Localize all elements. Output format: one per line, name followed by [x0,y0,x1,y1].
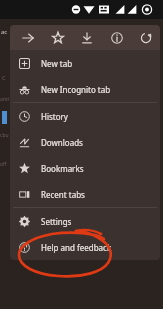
button[interactable]: Bookmark [48,28,68,48]
staticText: History [41,111,68,122]
button[interactable]: Download [77,28,97,48]
button[interactable]: History [10,103,160,129]
button[interactable]: Settings [10,208,160,234]
staticText: Help and feedback [41,242,112,253]
button[interactable]: Bookmarks [10,155,160,181]
button[interactable]: Downloads [10,129,160,155]
staticText: New tab [41,58,73,69]
staticText: Downloads [41,137,83,148]
button[interactable]: Forward [18,28,38,48]
button[interactable]: New tab [10,50,160,76]
staticText: anti [0,96,9,103]
button[interactable]: Page info [107,28,127,48]
staticText: off [0,161,7,168]
staticText: New Incognito tab [41,84,111,95]
staticText: C [2,74,6,82]
staticText: Settings [41,216,72,227]
staticText: Recent tabs [41,189,85,200]
staticText: Bookmarks [41,163,84,174]
button[interactable]: Reload [136,28,156,48]
staticText: cbu [0,132,9,139]
button[interactable]: Help and feedback [10,234,160,260]
button[interactable]: New Incognito tab [10,76,160,102]
staticText: ac [1,28,8,36]
button[interactable]: Recent tabs [10,181,160,207]
